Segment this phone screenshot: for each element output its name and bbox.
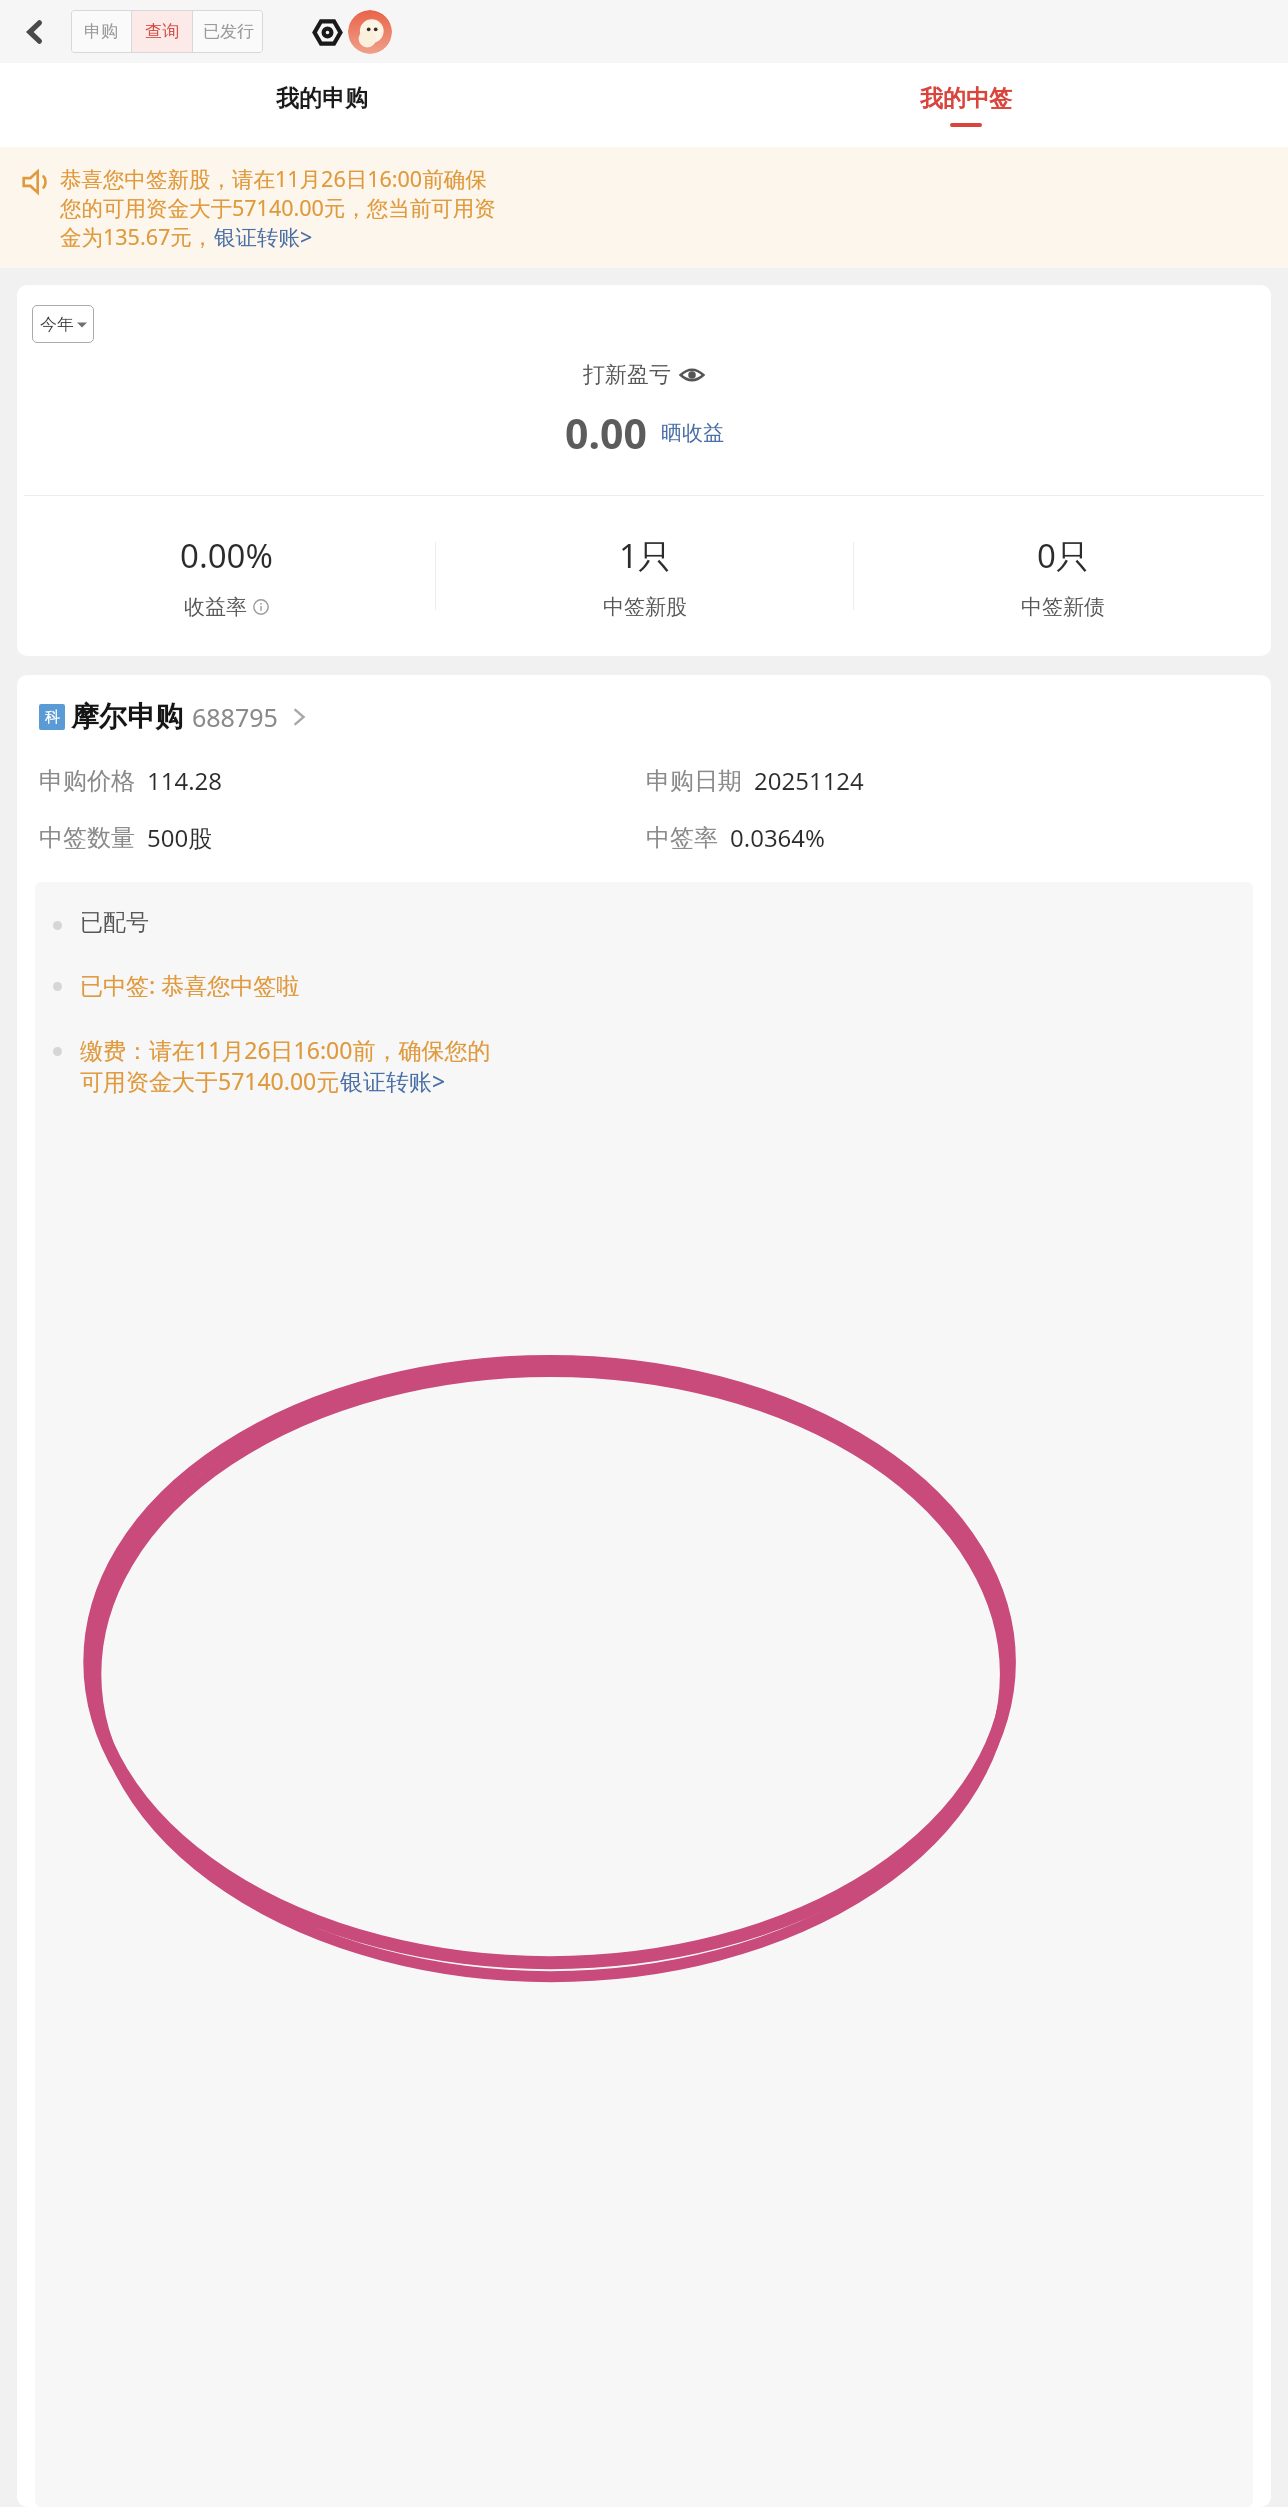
staticText: 114.28 [147, 764, 223, 797]
staticText: 您的可用资金大于57140.00元，您当前可用资 [60, 193, 496, 222]
staticText: 收益率 [184, 594, 247, 620]
staticText: 0.00% [180, 533, 273, 578]
staticText: 申购日期 [646, 766, 742, 796]
staticText: 中签率 [646, 823, 718, 853]
staticText: 500股 [147, 821, 213, 854]
button[interactable]: 已发行 [193, 10, 263, 53]
button[interactable]: 银证转账> [214, 222, 313, 251]
staticText: 20251124 [754, 764, 864, 797]
staticText: 摩尔申购 [71, 699, 183, 734]
staticText: 0只 [1037, 533, 1089, 578]
button[interactable]: 银证转账> [340, 1065, 446, 1096]
button[interactable]: 我的申购 [0, 63, 644, 147]
staticText: 我的申购 [276, 84, 368, 113]
button[interactable]: 查询 [132, 10, 192, 53]
staticText: 申购价格 [39, 766, 135, 796]
staticText: 0.0364% [730, 821, 826, 854]
staticText: 中签新债 [1021, 594, 1105, 620]
button[interactable]: Toggle visibility [679, 362, 705, 388]
button[interactable]: 科 [39, 699, 1271, 734]
button[interactable]: 今年 [32, 305, 94, 343]
button[interactable]: 恭喜您中签新股，请在11月26日16:00前确保 [22, 164, 1268, 251]
staticText: 金为135.67元， [60, 222, 214, 251]
staticText: 恭喜您中签新股，请在11月26日16:00前确保 [60, 164, 487, 193]
staticText: 申购 [84, 21, 118, 42]
staticText: 银证转账> [214, 222, 313, 251]
staticText: 已中签: 恭喜您中签啦 [80, 969, 300, 1000]
button[interactable]: 1只 [436, 496, 853, 656]
staticText: 可用资金大于57140.00元 [80, 1065, 340, 1096]
button[interactable]: 晒收益 [661, 420, 724, 446]
staticText: 查询 [145, 21, 179, 42]
staticText: 缴费：请在11月26日16:00前，确保您的 [80, 1034, 491, 1065]
staticText: 我的中签 [920, 84, 1012, 113]
staticText: 已发行 [203, 21, 254, 42]
button[interactable]: Settings [307, 12, 347, 52]
staticText: 已配号 [80, 908, 149, 937]
staticText: 1只 [619, 533, 671, 578]
staticText: 688795 [192, 700, 278, 734]
button[interactable]: 0.00% [17, 496, 435, 656]
button[interactable]: Back [14, 11, 56, 53]
staticText: 科 [45, 708, 60, 727]
staticText: 晒收益 [661, 420, 724, 446]
staticText: 中签新股 [603, 594, 687, 620]
staticText: 0.00 [565, 405, 647, 461]
button[interactable]: 我的中签 [644, 63, 1288, 147]
button[interactable]: 0只 [854, 496, 1271, 656]
staticText: 中签数量 [39, 823, 135, 853]
button[interactable]: 申购 [71, 10, 131, 53]
staticText: 打新盈亏 [583, 361, 671, 389]
staticText: 银证转账> [340, 1065, 446, 1096]
staticText: 今年 [40, 314, 74, 335]
button[interactable]: Profile [348, 10, 392, 54]
